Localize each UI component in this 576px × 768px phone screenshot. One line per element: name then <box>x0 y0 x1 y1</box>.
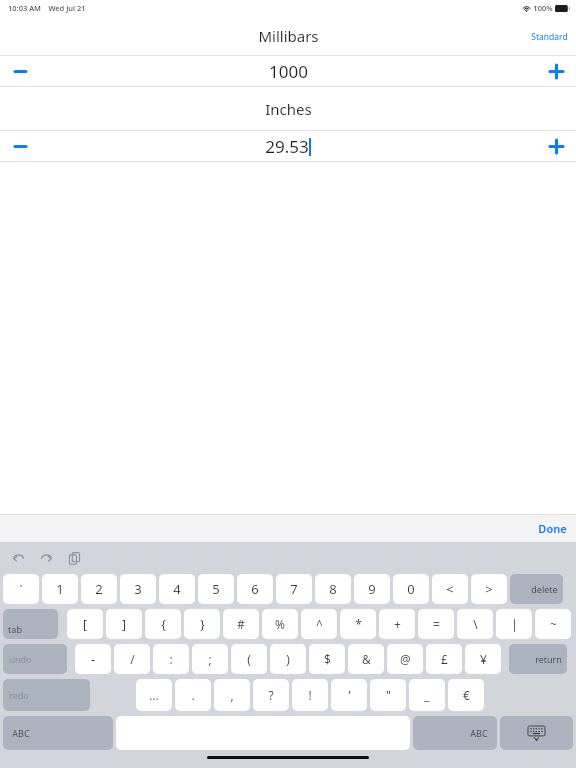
button[interactable]: return <box>509 644 567 674</box>
staticText: 2 <box>95 580 103 598</box>
staticText: Done <box>538 521 567 536</box>
staticText: $ <box>324 651 331 667</box>
button[interactable]: 8 <box>315 574 351 604</box>
staticText: Millibars <box>258 26 319 46</box>
staticText: 10:03 AM <box>8 3 41 13</box>
button[interactable]: [ <box>67 609 103 639</box>
button[interactable]: ; <box>192 644 228 674</box>
button[interactable]: 2 <box>81 574 117 604</box>
staticText: = <box>433 616 440 632</box>
staticText: , <box>230 687 234 703</box>
button[interactable]: ABC <box>413 716 497 750</box>
staticText: 100% <box>533 3 553 13</box>
button[interactable]: = <box>418 609 454 639</box>
button[interactable]: " <box>370 679 406 711</box>
staticText: Standard <box>531 31 568 43</box>
button[interactable]: £ <box>426 644 462 674</box>
button[interactable]: delete <box>510 574 563 604</box>
button[interactable]: Paste <box>66 550 83 567</box>
button[interactable]: ¥ <box>465 644 501 674</box>
button[interactable]: ` <box>3 574 39 604</box>
button[interactable]: : <box>153 644 189 674</box>
staticText: 3 <box>134 580 142 598</box>
button[interactable]: ’ <box>331 679 367 711</box>
button[interactable]: Decrease <box>0 56 40 86</box>
button[interactable]: # <box>223 609 259 639</box>
button[interactable]: 6 <box>237 574 273 604</box>
button[interactable]: | <box>496 609 532 639</box>
button[interactable]: < <box>432 574 468 604</box>
button[interactable]: 3 <box>120 574 156 604</box>
button[interactable]: { <box>145 609 181 639</box>
button[interactable]: 1 <box>42 574 78 604</box>
button[interactable]: Done <box>538 521 567 536</box>
staticText: 1 <box>56 580 64 598</box>
staticText: 1000 <box>269 60 308 83</box>
button[interactable]: ABC <box>3 716 113 750</box>
button[interactable]: 4 <box>159 574 195 604</box>
staticText: @ <box>400 651 411 667</box>
button[interactable]: … <box>136 679 172 711</box>
button[interactable]: Decrease <box>0 131 40 161</box>
button[interactable]: ! <box>292 679 328 711</box>
button[interactable]: 0 <box>393 574 429 604</box>
button[interactable]: - <box>75 644 111 674</box>
staticText: … <box>149 687 159 703</box>
button[interactable]: $ <box>309 644 345 674</box>
button[interactable]: Redo <box>38 550 55 567</box>
staticText: ) <box>286 651 290 667</box>
staticText: 0 <box>407 580 415 598</box>
button[interactable]: ) <box>270 644 306 674</box>
button[interactable]: tab <box>3 609 58 639</box>
button[interactable]: 7 <box>276 574 312 604</box>
staticText: 4 <box>173 580 181 598</box>
button[interactable]: . <box>175 679 211 711</box>
button[interactable]: / <box>114 644 150 674</box>
button[interactable]: € <box>448 679 484 711</box>
staticText: | <box>511 616 518 632</box>
button[interactable]: } <box>184 609 220 639</box>
staticText: { <box>161 616 166 632</box>
button[interactable]: 9 <box>354 574 390 604</box>
button[interactable]: 5 <box>198 574 234 604</box>
staticText: ] <box>122 616 126 632</box>
button[interactable]: Standard <box>531 31 568 43</box>
staticText: tab <box>8 623 22 635</box>
button[interactable]: * <box>340 609 376 639</box>
button[interactable]: Increase <box>536 56 576 86</box>
button[interactable]: + <box>379 609 415 639</box>
staticText: \ <box>473 616 478 632</box>
button[interactable]: & <box>348 644 384 674</box>
button[interactable]: undo <box>3 644 67 674</box>
staticText: < <box>446 580 454 598</box>
button[interactable]: ^ <box>301 609 337 639</box>
button[interactable]: ? <box>253 679 289 711</box>
button[interactable]: Increase <box>536 131 576 161</box>
button[interactable]: Undo <box>10 550 27 567</box>
button[interactable]: , <box>214 679 250 711</box>
staticText: £ <box>441 651 448 667</box>
staticText: ( <box>247 651 251 667</box>
staticText: 5 <box>212 580 220 598</box>
button[interactable]: ( <box>231 644 267 674</box>
staticText: [ <box>83 616 87 632</box>
staticText: ^ <box>316 616 323 632</box>
button[interactable]: Hide keyboard <box>500 716 573 750</box>
button[interactable]: > <box>471 574 507 604</box>
staticText: ¥ <box>480 651 487 667</box>
staticText: _ <box>424 687 430 703</box>
staticText: 9 <box>368 580 376 598</box>
button[interactable]: _ <box>409 679 445 711</box>
button[interactable]: % <box>262 609 298 639</box>
button[interactable]: ] <box>106 609 142 639</box>
button[interactable]: ~ <box>535 609 571 639</box>
button[interactable]: \ <box>457 609 493 639</box>
staticText: redo <box>9 689 29 701</box>
staticText: - <box>91 651 95 667</box>
staticText: / <box>130 651 135 667</box>
button[interactable]: redo <box>3 679 90 711</box>
button[interactable]: @ <box>387 644 423 674</box>
staticText: undo <box>9 653 32 665</box>
staticText: 7 <box>290 580 298 598</box>
